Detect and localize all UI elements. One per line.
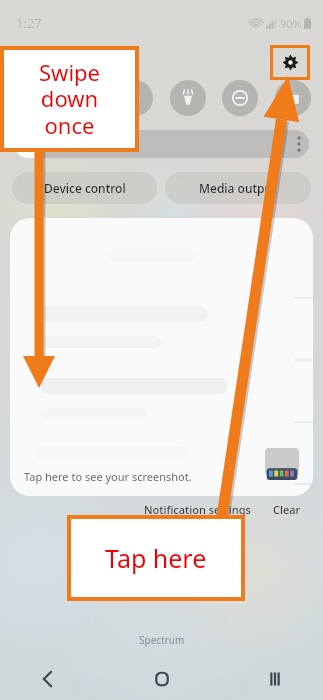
button[interactable]: Quick setting 1 [12,80,48,116]
staticText: Device control [44,180,126,196]
button[interactable]: Quick setting 3 [117,80,153,116]
staticText: Media output [199,180,277,196]
staticText: Notification settings [144,502,251,517]
button[interactable]: Tap here to see your screenshot. [10,218,313,496]
button[interactable]: Home [140,658,184,700]
button[interactable]: Recents [253,658,297,700]
button[interactable]: Quick setting 5 [222,80,258,116]
button[interactable]: Quick setting 6 [275,80,311,116]
button[interactable]: Settings [270,45,310,80]
staticText: 90% [280,16,302,31]
staticText: 1:27 [16,14,42,32]
button[interactable]: Notification settings [140,498,255,521]
staticText: Tap here to see your screenshot. [24,469,192,484]
button[interactable]: Back [26,658,70,700]
button[interactable]: Brightness [14,130,309,158]
staticText: Spectrum [139,633,185,647]
staticText: Clear [273,502,301,517]
button[interactable]: Quick setting 4 [170,80,206,116]
staticText: Tap here [105,541,207,575]
staticText: Swipe down once [39,57,100,141]
button[interactable]: Media output [165,172,311,204]
button[interactable]: Clear [269,498,305,521]
button[interactable]: Quick setting 2 [65,80,101,116]
button[interactable]: Device control [12,172,157,204]
